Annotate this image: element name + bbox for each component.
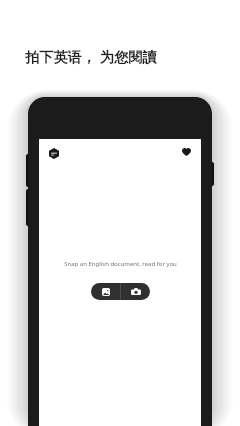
- staticText: 拍下英语， 为您閱讀: [25, 47, 157, 66]
- button[interactable]: Take a photo: [121, 283, 150, 300]
- button[interactable]: Choose image from gallery: [91, 283, 120, 300]
- staticText: Snap an English document, read for you: [64, 260, 177, 268]
- button[interactable]: Favorites: [180, 145, 193, 158]
- button[interactable]: App logo menu: [46, 147, 61, 159]
